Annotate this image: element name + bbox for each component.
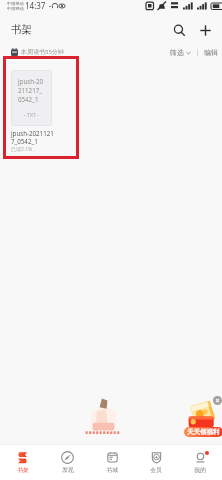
staticText: 14:37 [25,0,46,11]
button[interactable]: 天天领福利 [184,427,222,437]
button[interactable]: 会员 [134,444,178,480]
staticText: 天天领福利 [187,428,220,436]
staticText: 筛选 [170,48,184,57]
staticText: 书城 [106,466,118,473]
button[interactable]: 编辑 [203,48,219,57]
staticText: - TXT - [24,111,39,118]
button[interactable]: Rewards [184,398,217,431]
staticText: 书架 [11,23,32,36]
staticText: 已读2.1% [11,146,33,153]
button[interactable]: 我的 [178,444,222,480]
staticText: 本周读书55分钟 [21,48,64,56]
button[interactable]: 书架 [0,444,45,480]
button[interactable]: 发现 [45,444,90,480]
staticText: 发现 [62,466,74,473]
staticText: 中国移动 [7,6,24,11]
staticText: 书架 [17,466,29,473]
staticText: 中国移动 [7,1,24,6]
staticText: jpush-20211217_0542_1 [18,77,45,104]
button[interactable]: Search [167,18,191,42]
staticText: 我的 [194,466,206,473]
button[interactable]: jpush-20211217_0542_1 [11,70,55,153]
button[interactable]: Add [193,18,217,42]
button[interactable]: 本周读书55分钟 [11,48,64,56]
button[interactable]: 筛选 [169,48,192,57]
staticText: 会员 [150,466,162,473]
staticText: jpush-20211217_0542_1 [11,129,55,145]
button[interactable]: 书城 [90,444,134,480]
button[interactable]: Close [212,395,222,405]
